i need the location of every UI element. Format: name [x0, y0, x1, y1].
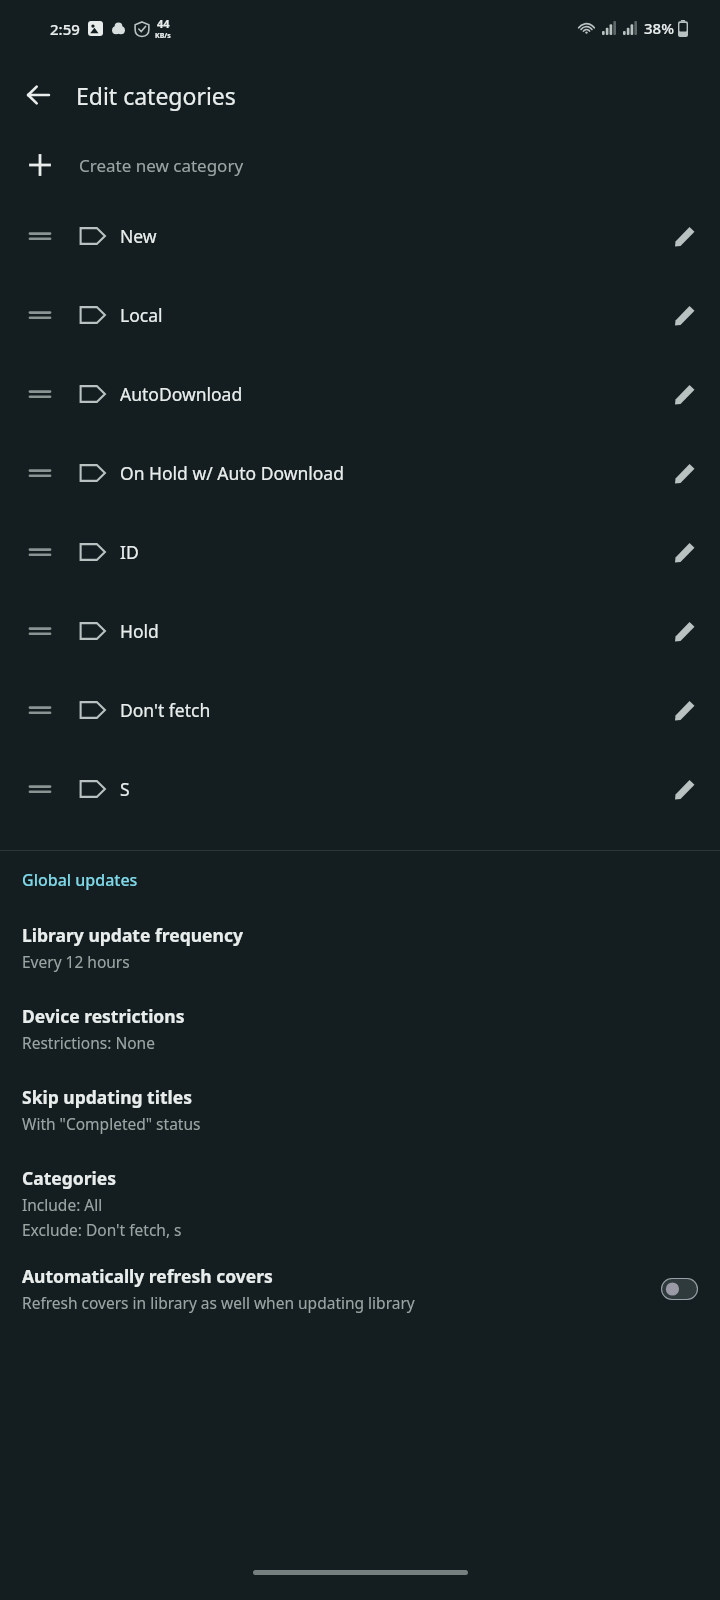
staticText: KB/s: [155, 31, 171, 41]
button[interactable]: Edit Don't fetch: [650, 670, 720, 749]
staticText: Every 12 hours: [22, 951, 130, 972]
staticText: Refresh covers in library as well when u…: [22, 1292, 415, 1313]
button[interactable]: Edit Local: [650, 275, 720, 354]
button[interactable]: Reorder On Hold w/ Auto Download: [0, 433, 720, 512]
button[interactable]: Skip updating titles: [0, 1083, 720, 1136]
staticText: Include: All: [22, 1194, 103, 1215]
button[interactable]: Automatically refresh covers: [0, 1264, 720, 1313]
other: Reorder Hold: [0, 591, 79, 670]
staticText: With "Completed" status: [22, 1113, 201, 1134]
staticText: 2:59: [50, 19, 80, 39]
button[interactable]: Categories: [0, 1164, 720, 1242]
button[interactable]: Device restrictions: [0, 1002, 720, 1055]
button[interactable]: Reorder New: [0, 196, 720, 275]
button[interactable]: Back: [10, 67, 66, 123]
staticText: Restrictions: None: [22, 1032, 155, 1053]
button[interactable]: Edit New: [650, 196, 720, 275]
staticText: AutoDownload: [120, 382, 650, 406]
button[interactable]: Edit ID: [650, 512, 720, 591]
staticText: Device restrictions: [22, 1004, 185, 1028]
staticText: On Hold w/ Auto Download: [120, 461, 650, 485]
other: Reorder Local: [0, 275, 79, 354]
staticText: Hold: [120, 619, 650, 643]
other: Reorder New: [0, 196, 79, 275]
button[interactable]: Reorder ID: [0, 512, 720, 591]
button[interactable]: Reorder Don't fetch: [0, 670, 720, 749]
button[interactable]: Reorder AutoDownload: [0, 354, 720, 433]
staticText: 38%: [644, 18, 674, 38]
staticText: S: [120, 777, 650, 801]
other: Reorder On Hold w/ Auto Download: [0, 433, 79, 512]
staticText: Categories: [22, 1166, 117, 1190]
button[interactable]: Reorder Hold: [0, 591, 720, 670]
staticText: Exclude: Don't fetch, s: [22, 1219, 182, 1240]
other: Reorder AutoDownload: [0, 354, 79, 433]
staticText: Don't fetch: [120, 698, 650, 722]
other: Reorder Don't fetch: [0, 670, 79, 749]
staticText: ID: [120, 540, 650, 564]
other: Automatically refresh covers toggle: [661, 1278, 698, 1300]
button[interactable]: Reorder Local: [0, 275, 720, 354]
staticText: New: [120, 224, 650, 248]
staticText: Automatically refresh covers: [22, 1264, 273, 1288]
staticText: Create new category: [79, 154, 244, 177]
staticText: Edit categories: [76, 80, 236, 111]
button[interactable]: Reorder S: [0, 749, 720, 828]
staticText: Skip updating titles: [22, 1085, 192, 1109]
staticText: Local: [120, 303, 650, 327]
button[interactable]: Edit S: [650, 749, 720, 828]
button[interactable]: Edit On Hold w/ Auto Download: [650, 433, 720, 512]
button[interactable]: Library update frequency: [0, 921, 720, 974]
other: Reorder S: [0, 749, 79, 828]
button[interactable]: Edit AutoDownload: [650, 354, 720, 433]
staticText: Library update frequency: [22, 923, 243, 947]
button[interactable]: Create new category: [0, 134, 720, 196]
other: Reorder ID: [0, 512, 79, 591]
staticText: 44: [157, 16, 170, 31]
staticText: Global updates: [22, 869, 138, 891]
button[interactable]: Edit Hold: [650, 591, 720, 670]
